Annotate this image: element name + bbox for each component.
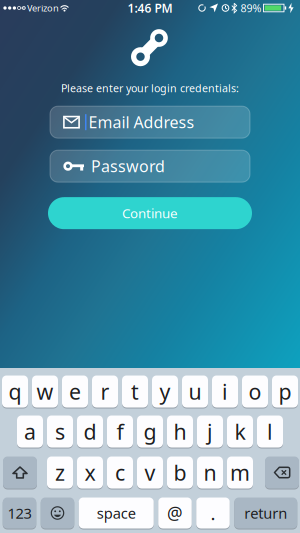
staticText: Continue [122,204,178,222]
staticText: Email Address [88,111,194,133]
button[interactable]: m [227,456,253,489]
button[interactable]: Email Address [50,106,250,138]
button[interactable]: b [167,456,193,489]
button[interactable]: x [77,456,103,489]
staticText: g [143,417,156,446]
staticText: 123 [7,503,31,523]
staticText: o [248,377,261,406]
staticText: c [115,458,125,487]
staticText: q [8,377,21,406]
button[interactable]: p [272,375,298,408]
button[interactable]: w [32,375,58,408]
button[interactable]: z [47,456,73,489]
button[interactable]: Delete [265,456,299,489]
staticText: r [100,377,109,406]
button[interactable]: n [197,456,223,489]
button[interactable]: o [242,375,268,408]
staticText: m [230,458,250,487]
button[interactable]: r [92,375,118,408]
staticText: Verizon [27,2,59,14]
button[interactable]: l [257,415,283,448]
button[interactable]: 123 [3,497,36,529]
staticText: n [203,458,216,487]
staticText: j [207,417,213,446]
button[interactable]: u [182,375,208,408]
button[interactable]: y [152,375,178,408]
button[interactable]: Emoji [41,497,74,529]
staticText: e [69,377,81,406]
button[interactable]: f [107,415,133,448]
staticText: return [244,503,287,523]
staticText: w [36,377,53,406]
staticText: f [116,417,123,446]
button[interactable]: return [234,497,297,529]
staticText: u [188,377,201,406]
button[interactable]: . [196,497,230,529]
button[interactable]: space [79,497,154,529]
button[interactable]: h [167,415,193,448]
staticText: Password [91,155,165,177]
staticText: 1:46 PM [127,0,172,16]
button[interactable]: t [122,375,148,408]
staticText: s [55,417,65,446]
button[interactable]: a [17,415,43,448]
button[interactable]: i [212,375,238,408]
button[interactable]: s [47,415,73,448]
button[interactable]: q [2,375,28,408]
staticText: i [222,377,228,406]
staticText: v [144,458,155,487]
staticText: k [234,417,245,446]
staticText: . [210,501,215,525]
staticText: p [278,377,291,406]
staticText: y [159,377,170,406]
button[interactable]: Shift [3,456,37,489]
button[interactable]: e [62,375,88,408]
button[interactable]: g [137,415,163,448]
button[interactable]: j [197,415,223,448]
staticText: space [97,503,136,523]
staticText: l [267,417,273,446]
button[interactable]: @ [158,497,192,529]
staticText: b [173,458,186,487]
staticText: a [24,417,36,446]
staticText: z [55,458,65,487]
button[interactable]: v [137,456,163,489]
staticText: @ [167,501,183,524]
button[interactable]: Continue [48,197,252,229]
staticText: Please enter your login credentials: [61,81,239,95]
staticText: h [173,417,186,446]
button[interactable]: d [77,415,103,448]
button[interactable]: k [227,415,253,448]
staticText: 89% [240,1,261,15]
button[interactable]: c [107,456,133,489]
staticText: t [131,377,139,406]
staticText: d [83,417,96,446]
button[interactable]: Password [50,150,250,182]
staticText: x [84,458,95,487]
